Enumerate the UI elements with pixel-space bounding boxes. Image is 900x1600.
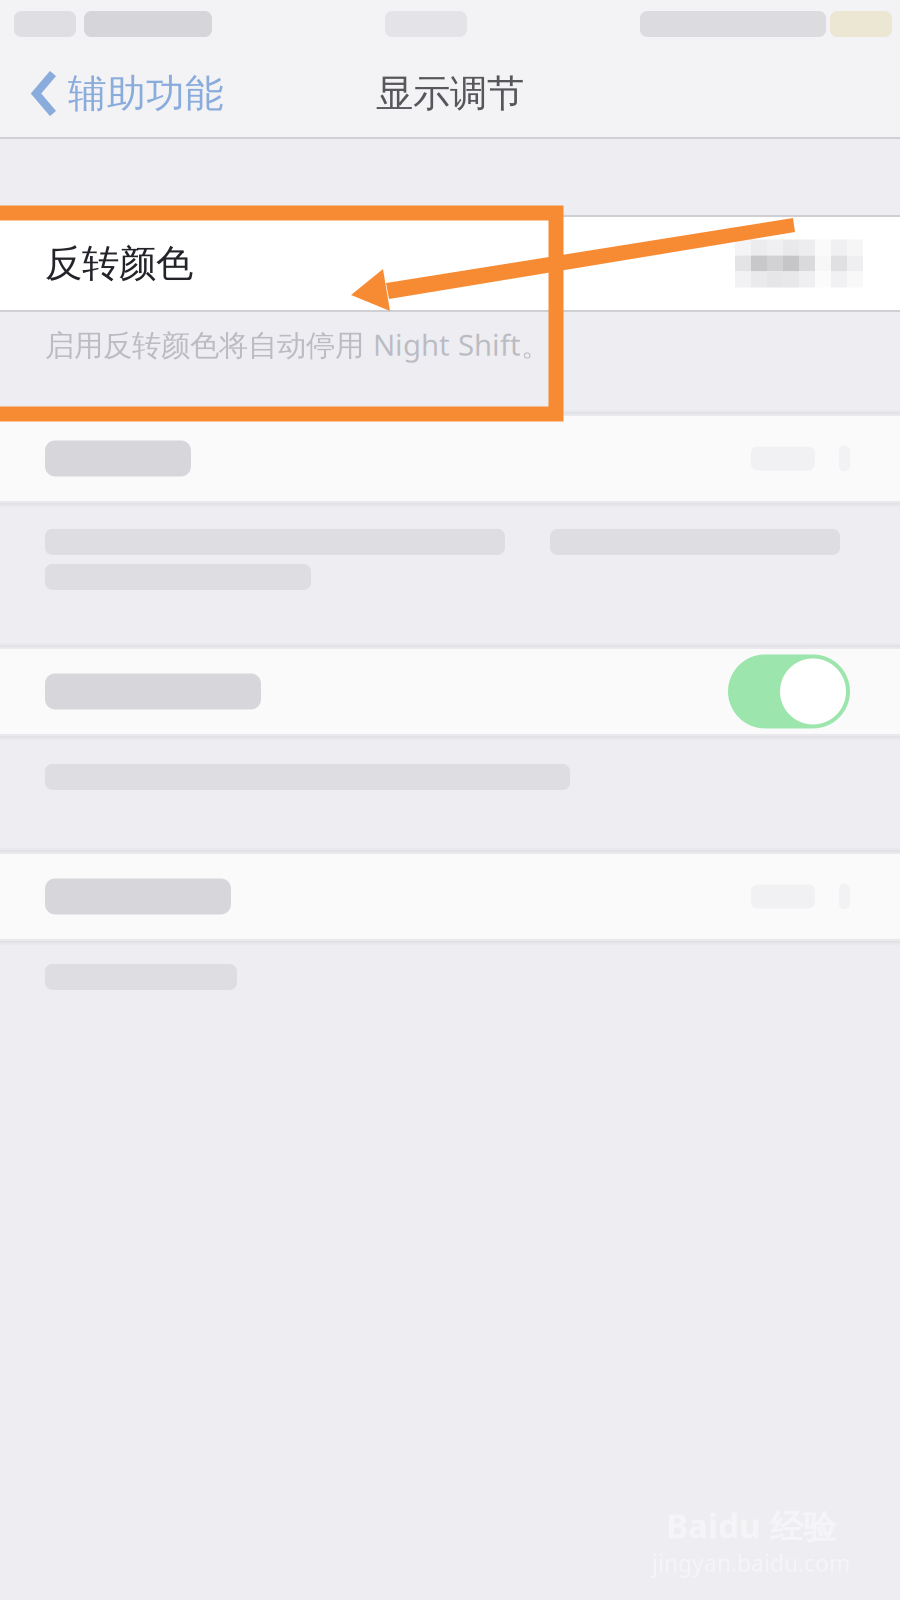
staticText: Baidu 经验 bbox=[666, 1503, 836, 1548]
button[interactable] bbox=[0, 643, 900, 740]
staticText: 辅助功能 bbox=[68, 70, 224, 117]
staticText: 启用反转颜色将自动停用 Night Shift。 bbox=[45, 325, 550, 364]
button[interactable] bbox=[0, 848, 900, 945]
button[interactable]: 辅助功能 bbox=[0, 48, 246, 139]
button[interactable]: 反转颜色 bbox=[0, 215, 900, 312]
staticText: 反转颜色 bbox=[45, 241, 193, 286]
staticText: 显示调节 bbox=[376, 71, 524, 116]
button[interactable] bbox=[0, 410, 900, 507]
